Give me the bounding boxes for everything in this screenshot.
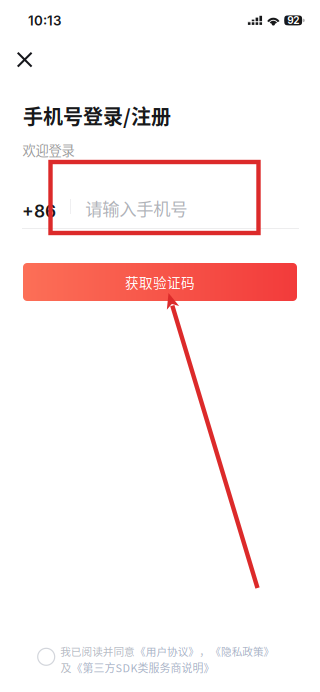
staticText: 及 — [61, 660, 72, 675]
staticText: 《第三方SDK类服务商说明》 — [72, 660, 215, 675]
staticText: 请输入手机号 — [85, 195, 187, 221]
staticText: 我已阅读并同意 — [60, 643, 135, 659]
button[interactable]: 《第三方SDK类服务商说明》 — [72, 660, 215, 675]
staticText: 欢迎登录 — [22, 140, 74, 159]
staticText: 《用户协议》 — [135, 643, 199, 659]
staticText: 92 — [287, 14, 299, 26]
button[interactable]: Agree to terms — [33, 643, 60, 670]
button[interactable]: 《隐私政策》 — [210, 643, 275, 659]
button[interactable]: 获取验证码 — [23, 263, 297, 301]
staticText: +86 — [22, 201, 56, 222]
staticText: 获取验证码 — [125, 272, 195, 292]
button[interactable]: 《用户协议》 — [135, 643, 199, 659]
staticText: 手机号登录/注册 — [23, 101, 171, 130]
button[interactable]: Close — [0, 0, 45, 80]
staticText: 10:13 — [28, 13, 61, 29]
staticText: 《隐私政策》 — [210, 643, 275, 659]
staticText: ， — [199, 643, 210, 659]
